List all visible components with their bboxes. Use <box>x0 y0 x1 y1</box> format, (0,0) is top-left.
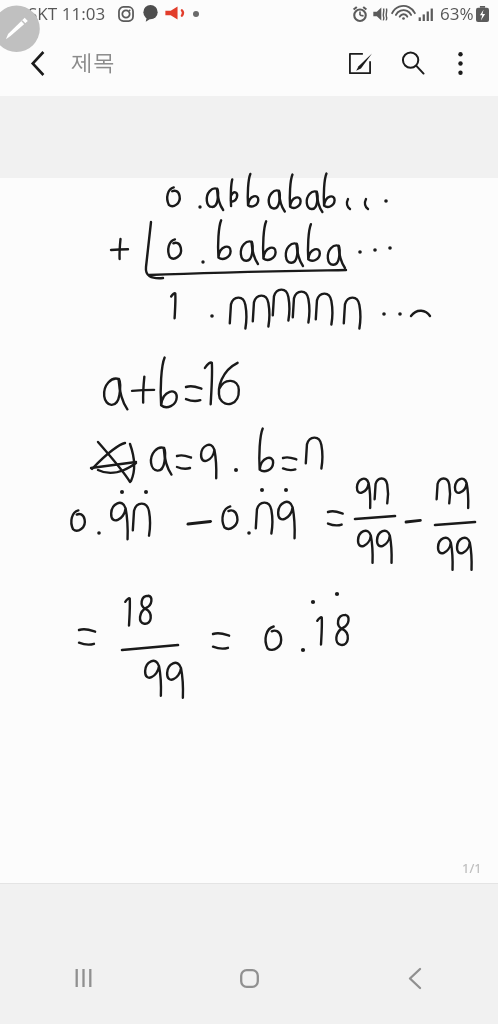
staticText: 제목 <box>71 49 115 77</box>
button[interactable]: Back <box>16 41 60 85</box>
button[interactable]: Home <box>166 969 332 1009</box>
staticText: SKT 11:03 <box>28 2 106 25</box>
staticText: 1/1 <box>462 859 482 877</box>
button[interactable]: Back <box>332 969 498 1009</box>
staticText: 63% <box>440 2 474 25</box>
button[interactable]: Edit <box>334 40 380 86</box>
button[interactable]: More options <box>440 43 480 83</box>
button[interactable]: Pen tool <box>0 0 498 1024</box>
button[interactable]: Search <box>387 40 433 86</box>
button[interactable]: Recent apps <box>0 969 166 1009</box>
